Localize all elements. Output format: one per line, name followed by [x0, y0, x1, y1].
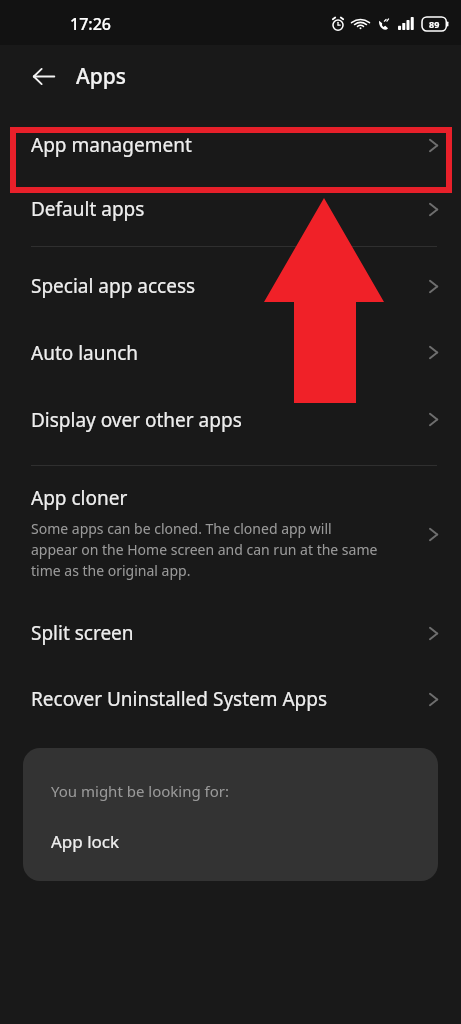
staticText: 89	[429, 18, 440, 30]
staticText: Apps	[76, 62, 127, 91]
staticText: Display over other apps	[31, 407, 242, 433]
staticText: App cloner	[31, 485, 128, 511]
button[interactable]: Display over other apps	[0, 386, 461, 453]
button[interactable]: You might be looking for:	[23, 748, 438, 881]
staticText: 17:26	[70, 13, 111, 35]
staticText: Special app access	[31, 273, 196, 299]
staticText: appear on the Home screen and can run at…	[31, 540, 378, 559]
staticText: App management	[31, 132, 192, 158]
button[interactable]: Recover Uninstalled System Apps	[0, 666, 461, 732]
staticText: Auto launch	[31, 340, 139, 366]
staticText: Split screen	[31, 620, 134, 646]
button[interactable]: Special app access	[0, 253, 461, 319]
staticText: Recover Uninstalled System Apps	[31, 686, 328, 712]
button[interactable]: Split screen	[0, 600, 461, 666]
staticText: Some apps can be cloned. The cloned app …	[31, 519, 332, 538]
staticText: You might be looking for:	[51, 781, 230, 801]
button[interactable]: App management	[0, 114, 461, 176]
button[interactable]: Default apps	[0, 176, 461, 242]
button[interactable]: Auto launch	[0, 319, 461, 386]
staticText: Default apps	[31, 196, 145, 222]
staticText: time as the original app.	[31, 561, 191, 580]
button[interactable]: Back	[22, 55, 64, 97]
button[interactable]: App cloner	[0, 466, 461, 598]
staticText: App lock	[51, 830, 120, 853]
